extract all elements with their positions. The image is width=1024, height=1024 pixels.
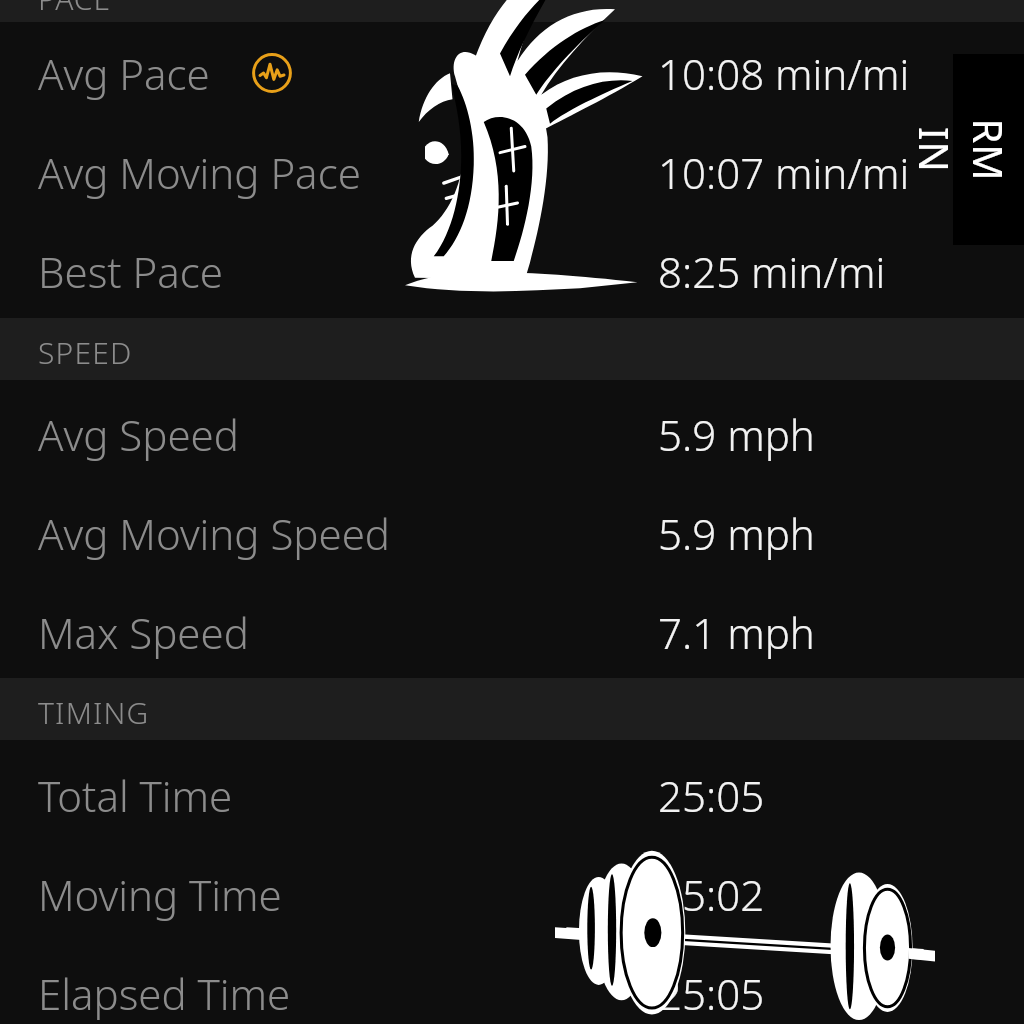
staticText: Avg Pace xyxy=(38,45,210,102)
staticText: Best Pace xyxy=(38,243,223,300)
staticText: 10:07 min/mi xyxy=(658,144,910,201)
staticText: 5.9 mph xyxy=(658,406,815,463)
staticText: SPEED xyxy=(38,332,133,368)
button[interactable]: Moving Time xyxy=(0,864,1024,924)
button[interactable]: Avg Moving Pace xyxy=(0,142,1024,202)
staticText: 10:08 min/mi xyxy=(658,45,910,102)
button[interactable]: Total Time xyxy=(0,765,1024,825)
staticText: 8:25 min/mi xyxy=(658,243,886,300)
staticText: TIMING xyxy=(38,692,150,728)
button[interactable]: Max Speed xyxy=(0,602,1024,662)
staticText: 25:05 xyxy=(658,965,765,1022)
button[interactable]: Garmin xyxy=(953,54,1024,245)
button[interactable]: Avg Pace xyxy=(0,43,1024,103)
staticText: GARMIN xyxy=(907,114,1024,185)
staticText: 25:05 xyxy=(658,767,765,824)
staticText: Elapsed Time xyxy=(38,965,291,1022)
staticText: 5.9 mph xyxy=(658,505,815,562)
staticText: Avg Moving Speed xyxy=(38,505,391,562)
button[interactable]: Elapsed Time xyxy=(0,963,1024,1023)
staticText: Avg Moving Pace xyxy=(38,144,361,201)
button[interactable]: Best Pace xyxy=(0,241,1024,301)
button[interactable]: Pace graph xyxy=(252,53,292,93)
staticText: Max Speed xyxy=(38,604,249,661)
button[interactable]: Avg Moving Speed xyxy=(0,503,1024,563)
staticText: Total Time xyxy=(38,767,233,824)
staticText: 25:02 xyxy=(658,866,765,923)
button[interactable]: Avg Speed xyxy=(0,404,1024,464)
staticText: Avg Speed xyxy=(38,406,239,463)
staticText: 7.1 mph xyxy=(658,604,815,661)
staticText: PACE xyxy=(38,0,112,19)
staticText: Moving Time xyxy=(38,866,282,923)
